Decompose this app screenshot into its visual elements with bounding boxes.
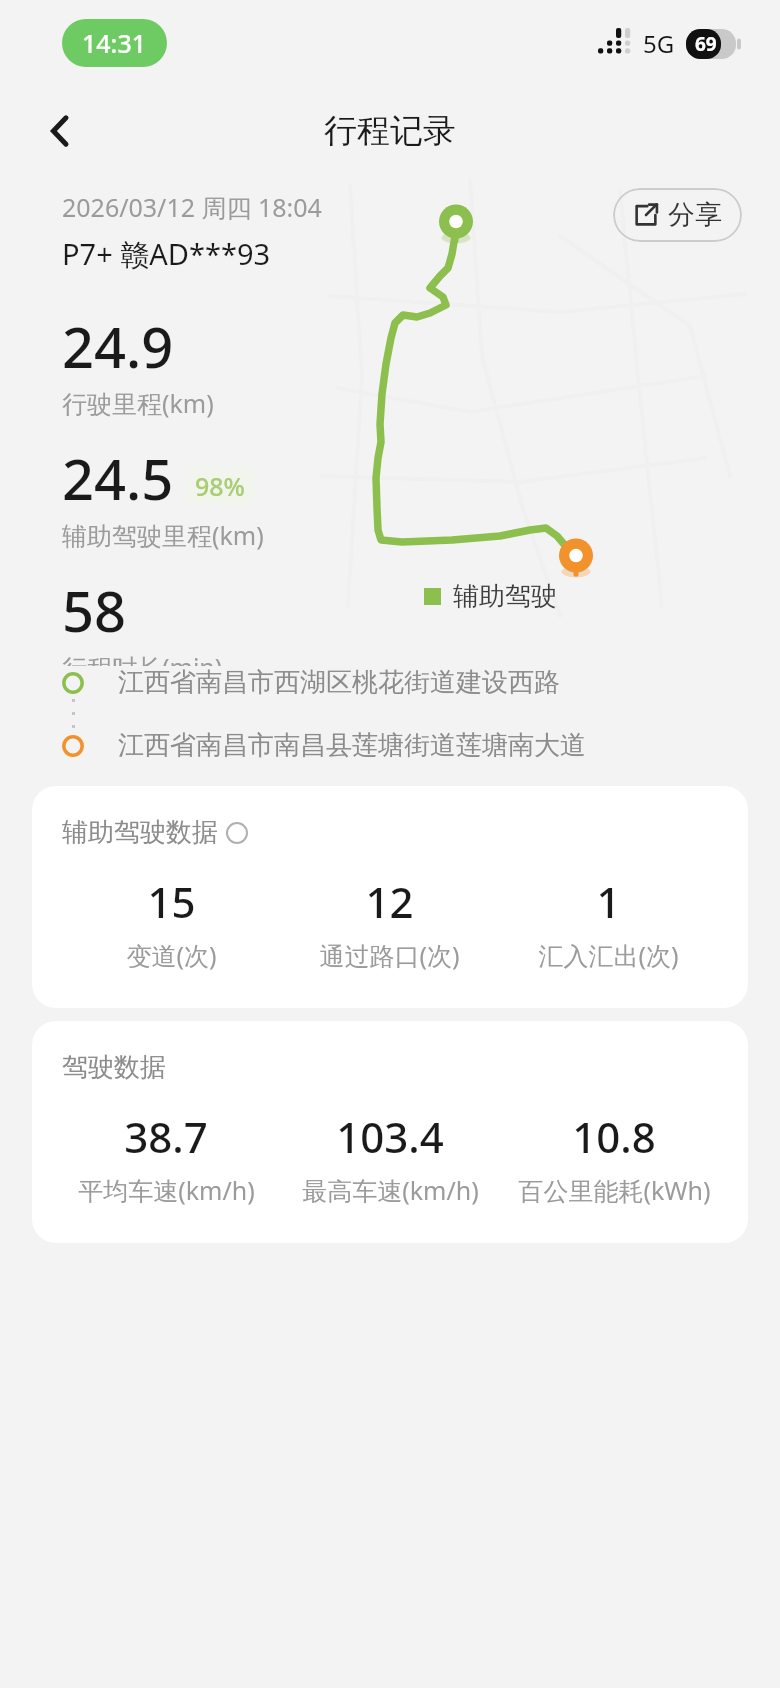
staticText: 行驶里程(km) [62,386,214,420]
staticText: 通过路口(次) [319,938,460,972]
staticText: 分享 [668,198,722,232]
staticText: 15 [147,873,196,930]
staticText: 14:31 [82,26,147,60]
staticText: 辅助驾驶里程(km) [62,518,264,552]
button[interactable]: Back [30,101,90,161]
staticText: 行程记录 [324,110,456,152]
staticText: 10.8 [572,1108,656,1165]
staticText: 69 [695,31,717,57]
staticText: 5G [643,27,675,60]
staticText: 98% [195,469,245,503]
staticText: 24.5 [62,440,174,516]
staticText: 百公里能耗(kWh) [518,1173,711,1207]
staticText: 24.9 [62,308,174,384]
staticText: 12 [365,873,414,930]
staticText: 汇入汇出(次) [538,938,679,972]
staticText: 2026/03/12 周四 18:04 [62,190,322,224]
staticText: 最高车速(km/h) [302,1173,479,1207]
staticText: 103.4 [336,1108,444,1165]
staticText: 辅助驾驶数据 [62,816,218,849]
button[interactable]: 分享 [613,188,742,242]
staticText: 变道(次) [126,938,217,972]
button[interactable]: 驾驶数据 [32,1021,748,1243]
staticText: 江西省南昌市西湖区桃花街道建设西路 [118,666,560,699]
staticText: P7+ 赣AD***93 [62,234,271,274]
staticText: 平均车速(km/h) [78,1173,255,1207]
staticText: 58 [62,572,127,648]
staticText: 行程时长(min) [62,650,223,666]
staticText: 驾驶数据 [62,1051,166,1084]
staticText: 江西省南昌市南昌县莲塘街道莲塘南大道 [118,729,586,762]
staticText: 辅助驾驶 [453,580,557,613]
staticText: 38.7 [124,1108,208,1165]
button[interactable]: 辅助驾驶数据 [32,786,748,1008]
staticText: 1 [596,873,621,930]
